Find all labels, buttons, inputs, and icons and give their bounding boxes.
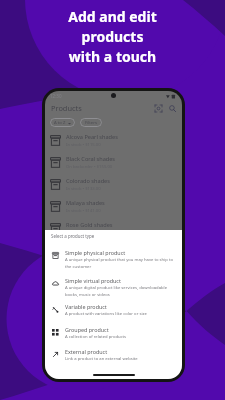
button[interactable]: Simple virtual product — [45, 277, 182, 297]
button[interactable]: Rose Gold shades — [45, 217, 182, 239]
button[interactable]: A to Z — [50, 118, 75, 127]
staticText: Black Coral shades — [66, 155, 116, 163]
staticText: External product — [65, 348, 108, 355]
button[interactable]: Alcova Pearl shades — [45, 129, 182, 151]
staticText: A unique physical product that you may h… — [65, 257, 176, 269]
staticText: Filters — [85, 120, 97, 126]
staticText: Grouped product — [65, 326, 109, 333]
staticText: In stock • $129.00 — [66, 252, 101, 258]
staticText: Products — [51, 103, 82, 113]
staticText: A collection of related products — [65, 334, 127, 340]
button[interactable]: Simple physical product — [45, 249, 182, 269]
button[interactable]: Variable product — [45, 303, 182, 317]
button[interactable]: Scan barcode — [153, 103, 164, 114]
staticText: In stock • $149.00 — [66, 230, 101, 236]
staticText: Add and edit products with a touch — [68, 7, 157, 66]
staticText: A unique digital product like services, … — [65, 285, 176, 297]
staticText: Colorado shades — [66, 177, 110, 185]
staticText: Simple physical product — [65, 249, 126, 256]
staticText: A product with variations like color or … — [65, 311, 147, 317]
button[interactable]: Grouped product — [45, 326, 182, 340]
staticText: 12:30 — [50, 93, 62, 99]
button[interactable]: Black Coral shades — [45, 151, 182, 173]
staticText: Link a product to an external website — [65, 356, 138, 362]
staticText: A to Z — [54, 120, 66, 126]
staticText: Variable product — [65, 303, 107, 310]
staticText: Alcova Pearl shades — [66, 133, 118, 141]
staticText: Rose Gold shades — [66, 221, 113, 229]
button[interactable]: Filters — [80, 118, 102, 127]
staticText: Simple virtual product — [65, 277, 121, 284]
staticText: Malaya shades — [66, 199, 105, 207]
button[interactable]: Search — [167, 103, 178, 114]
button[interactable]: Malaya shades — [45, 195, 182, 217]
button[interactable]: External product — [45, 348, 182, 362]
button[interactable]: Colorado shades — [45, 173, 182, 195]
staticText: Select a product type — [51, 233, 95, 239]
button[interactable]: Silver Mist shades — [45, 239, 182, 261]
